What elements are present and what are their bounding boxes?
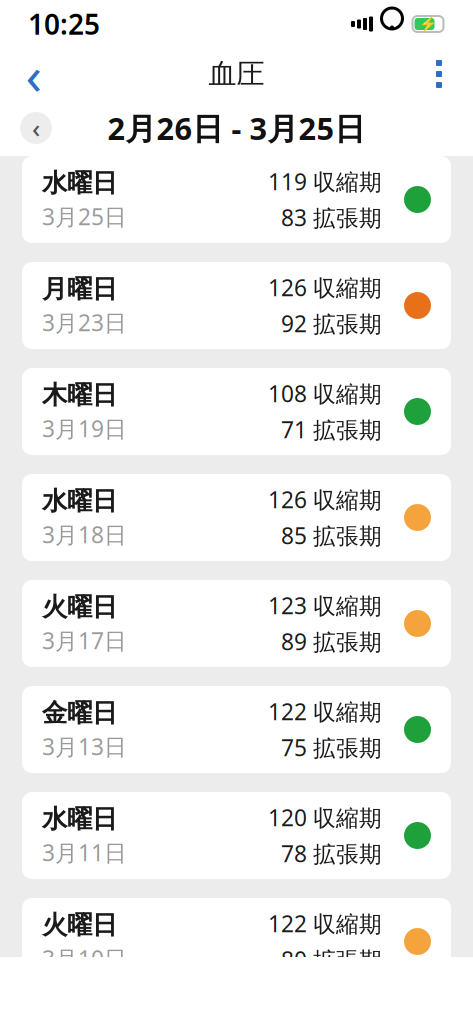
staticText: 火曜日 (42, 591, 117, 622)
staticText: 92 拡張期 (281, 308, 382, 339)
staticText: 月曜日 (42, 273, 117, 304)
staticText: 122 収縮期 (268, 696, 382, 726)
staticText: 126 収縮期 (268, 484, 382, 514)
staticText: 71 拡張期 (281, 414, 382, 445)
staticText: 119 収縮期 (268, 166, 382, 196)
button[interactable]: 水曜日 (22, 474, 451, 561)
staticText: 3月19日 (42, 413, 127, 444)
button[interactable]: 水曜日 (22, 156, 451, 243)
staticText: 108 収縮期 (268, 378, 382, 408)
staticText: 2月26日 - 3月25日 (107, 108, 365, 148)
staticText: 水曜日 (42, 803, 117, 834)
staticText: 122 収縮期 (268, 908, 382, 938)
staticText: ‹ (32, 111, 40, 145)
staticText: 83 拡張期 (281, 202, 382, 233)
staticText: 火曜日 (42, 909, 117, 940)
button[interactable]: Previous period (20, 112, 52, 144)
staticText: 89 拡張期 (281, 626, 382, 657)
staticText: 120 収縮期 (268, 802, 382, 832)
staticText: 血圧 (208, 57, 264, 91)
staticText: 85 拡張期 (281, 520, 382, 551)
staticText: 123 収縮期 (268, 590, 382, 620)
staticText: 3月10日 (42, 943, 127, 974)
staticText: 3月11日 (42, 837, 127, 868)
staticText: 木曜日 (42, 379, 117, 410)
staticText: 80 拡張期 (281, 944, 382, 975)
button[interactable]: 火曜日 (22, 580, 451, 667)
staticText: 3月13日 (42, 731, 127, 762)
button[interactable]: Back (8, 50, 60, 98)
staticText: 3月18日 (42, 519, 127, 550)
staticText: 126 収縮期 (268, 272, 382, 302)
staticText: 75 拡張期 (281, 732, 382, 763)
staticText: 3月17日 (42, 625, 127, 656)
staticText: 3月23日 (42, 307, 127, 338)
button[interactable]: 水曜日 (22, 792, 451, 879)
staticText: 金曜日 (42, 697, 117, 728)
button[interactable]: 木曜日 (22, 368, 451, 455)
staticText: 78 拡張期 (281, 838, 382, 869)
button[interactable]: 金曜日 (22, 686, 451, 773)
button[interactable]: More options (413, 50, 465, 98)
staticText: ⚡ (419, 16, 437, 32)
staticText: 水曜日 (42, 485, 117, 516)
staticText: 10:25 (28, 5, 100, 43)
staticText: ‹ (25, 39, 42, 109)
button[interactable]: 火曜日 (22, 898, 451, 985)
button[interactable]: 月曜日 (22, 262, 451, 349)
staticText: 3月25日 (42, 201, 127, 232)
staticText: 水曜日 (42, 167, 117, 198)
